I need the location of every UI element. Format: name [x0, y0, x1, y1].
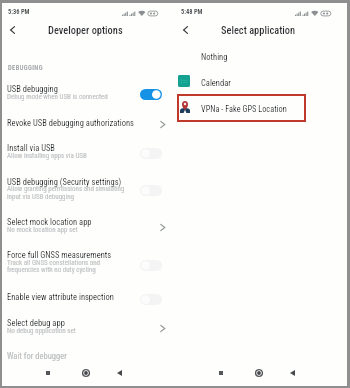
button[interactable]: Back — [175, 20, 195, 40]
staticText: DEBUGGING — [8, 64, 43, 72]
button[interactable]: Recents — [212, 364, 230, 382]
button[interactable] — [2, 346, 175, 365]
button[interactable] — [2, 77, 175, 107]
staticText: Install via USB — [7, 143, 55, 153]
button[interactable] — [175, 47, 347, 72]
staticText: Calendar — [201, 78, 231, 88]
staticText: Nothing — [201, 52, 228, 62]
staticText: Developer options — [48, 24, 123, 36]
staticText: 5:36 PM — [8, 8, 30, 16]
button[interactable] — [2, 111, 175, 139]
staticText: 5:48 PM — [181, 8, 203, 16]
button[interactable] — [2, 287, 175, 313]
button[interactable] — [2, 213, 175, 243]
staticText: Debug mode when USB is connected — [7, 93, 108, 101]
staticText: Allow installing apps via USB — [7, 152, 87, 160]
staticText: Enable view attribute inspection — [7, 292, 114, 302]
staticText: Revoke USB debugging authorizations — [7, 118, 134, 128]
button[interactable] — [175, 72, 347, 97]
staticText: Allow granting permissions and simulatin… — [7, 185, 125, 193]
button[interactable] — [140, 260, 162, 271]
staticText: Select debug app — [7, 318, 65, 328]
staticText: No debug application set — [7, 327, 76, 335]
button[interactable]: Open — [155, 321, 169, 335]
button[interactable] — [140, 89, 162, 100]
staticText: Select mock location app — [7, 217, 92, 227]
button[interactable]: Back — [110, 364, 128, 382]
staticText: Select application — [221, 24, 296, 36]
button[interactable]: Open — [155, 220, 169, 234]
button[interactable] — [177, 94, 306, 122]
staticText: Force full GNSS measurements — [7, 250, 112, 260]
button[interactable] — [140, 148, 162, 159]
button[interactable] — [140, 185, 162, 196]
button[interactable] — [2, 139, 175, 168]
button[interactable]: Back — [2, 20, 22, 40]
staticText: input via USB debugging — [7, 193, 75, 201]
staticText: No mock location app set — [7, 226, 78, 234]
button[interactable] — [2, 313, 175, 343]
button[interactable] — [140, 294, 162, 305]
button[interactable]: Home — [250, 364, 268, 382]
staticText: frequencies with no duty cycling — [7, 266, 96, 274]
button[interactable]: Open — [155, 117, 169, 131]
button[interactable] — [2, 171, 175, 208]
button[interactable] — [2, 246, 175, 283]
button[interactable]: Back — [283, 364, 301, 382]
staticText: Wait for debugger — [7, 351, 67, 361]
button[interactable]: Recents — [39, 364, 57, 382]
staticText: Track all GNSS constellations and — [7, 259, 101, 267]
staticText: USB debugging — [7, 84, 58, 94]
staticText: USB debugging (Security settings) — [7, 177, 122, 187]
staticText: VPNa - Fake GPS Location — [201, 104, 287, 114]
button[interactable]: Home — [77, 364, 95, 382]
